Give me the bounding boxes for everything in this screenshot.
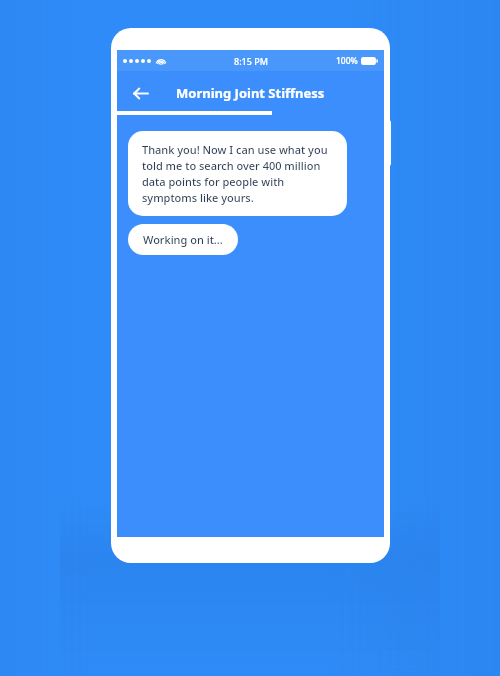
button[interactable]: Working on it... (128, 224, 238, 255)
button[interactable]: Thank you! Now I can use what you told m… (128, 131, 347, 216)
button[interactable]: Back (127, 80, 153, 106)
staticText: Working on it... (143, 232, 223, 247)
staticText: 100% (336, 55, 358, 67)
staticText: Thank you! Now I can use what you told m… (142, 142, 333, 205)
staticText: Morning Joint Stiffness (176, 84, 325, 102)
staticText: 8:15 PM (234, 55, 268, 67)
